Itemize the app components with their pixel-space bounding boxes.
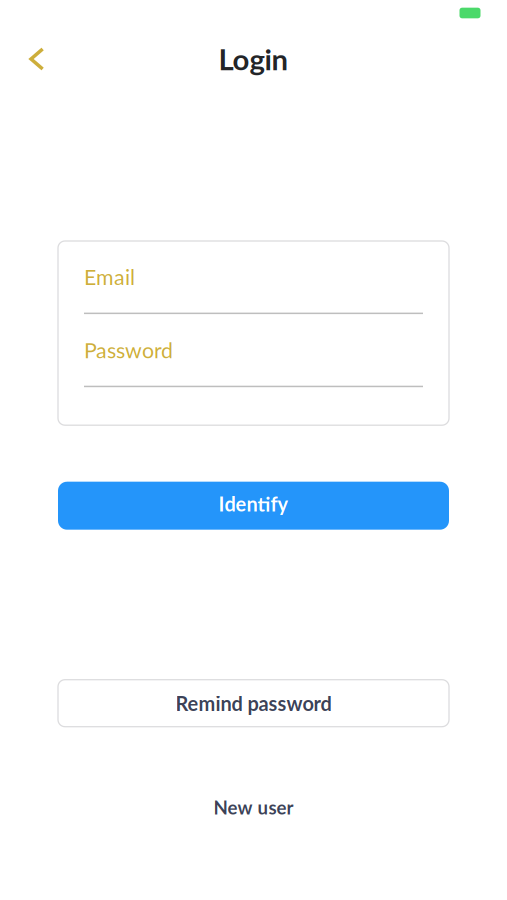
staticText: Email	[84, 264, 135, 290]
staticText: New user	[213, 796, 293, 819]
button[interactable]: Password	[84, 337, 423, 387]
staticText: Remind password	[175, 691, 331, 715]
staticText: Identify	[218, 492, 288, 516]
button[interactable]: New user	[187, 787, 319, 828]
button[interactable]: Email	[84, 264, 423, 314]
staticText: Login	[218, 41, 288, 77]
button[interactable]: Remind password	[58, 680, 449, 727]
button[interactable]: Identify	[58, 482, 449, 530]
staticText: Password	[84, 337, 173, 363]
button[interactable]: Back	[0, 38, 59, 80]
